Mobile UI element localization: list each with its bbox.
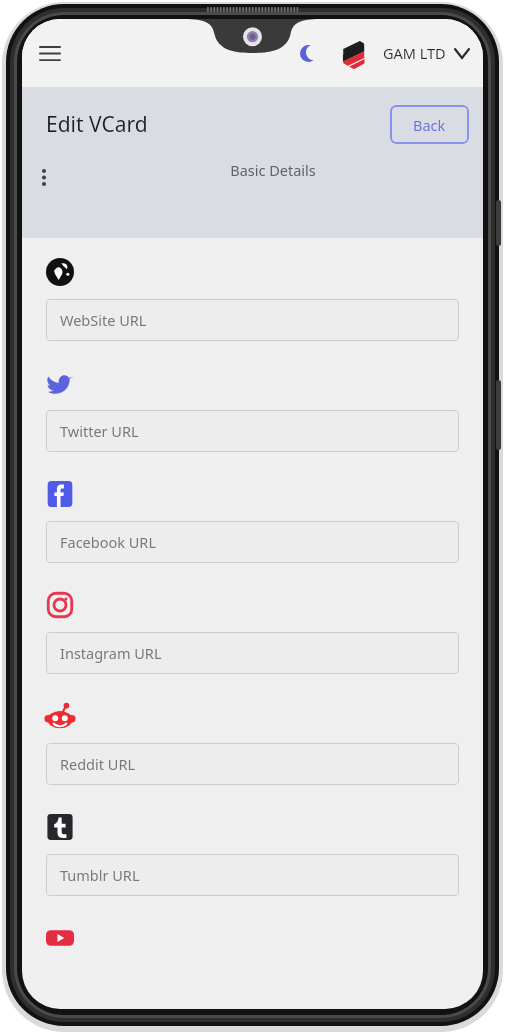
staticText: Back <box>413 115 446 135</box>
button[interactable]: YouTube <box>46 924 74 952</box>
button[interactable]: Reddit URL <box>46 743 459 785</box>
staticText: Instagram URL <box>60 643 162 663</box>
button[interactable]: GAM LTD <box>379 37 473 69</box>
button[interactable]: Open navigation menu <box>28 31 72 75</box>
staticText: Tumblr URL <box>60 865 140 885</box>
staticText: Basic Details <box>230 160 316 180</box>
button[interactable]: Basic Details <box>62 160 483 194</box>
button[interactable]: App logo <box>337 36 371 70</box>
staticText: WebSite URL <box>60 310 147 330</box>
button[interactable]: Tumblr URL <box>46 854 459 896</box>
button[interactable]: reddit <box>46 702 74 730</box>
button[interactable]: More tabs <box>26 160 62 194</box>
button[interactable]: Back <box>390 105 469 144</box>
button[interactable]: Instagram URL <box>46 632 459 674</box>
staticText: Facebook URL <box>60 532 156 552</box>
staticText: Twitter URL <box>60 421 139 441</box>
button[interactable]: facebook <box>46 480 74 508</box>
button[interactable]: web <box>46 258 74 286</box>
button[interactable]: Toggle dark mode <box>291 36 325 70</box>
staticText: GAM LTD <box>383 43 446 63</box>
button[interactable]: WebSite URL <box>46 299 459 341</box>
button[interactable]: tumblr <box>46 813 74 841</box>
button[interactable]: twitter <box>46 369 74 397</box>
staticText: Edit VCard <box>46 110 148 139</box>
button[interactable]: Facebook URL <box>46 521 459 563</box>
button[interactable]: instagram <box>46 591 74 619</box>
button[interactable]: Twitter URL <box>46 410 459 452</box>
staticText: Reddit URL <box>60 754 135 774</box>
